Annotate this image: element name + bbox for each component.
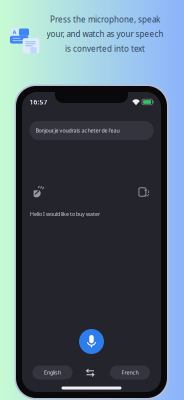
staticText: Hello I would like to buy water [30, 210, 100, 218]
button[interactable]: Start recording [79, 329, 104, 354]
staticText: 16:57 [29, 98, 47, 106]
button[interactable]: Swap languages [84, 366, 98, 378]
button[interactable]: English [32, 365, 72, 379]
staticText: A [12, 29, 16, 36]
staticText: Press the microphone, speak [50, 14, 160, 25]
staticText: Bonjour, je voudrais acheter de l'eau [35, 127, 119, 134]
staticText: is converted into text [65, 43, 145, 54]
staticText: your, and watch as your speech [46, 29, 163, 39]
button[interactable]: Play source audio [30, 183, 52, 203]
button[interactable]: French [110, 365, 150, 379]
staticText: English [44, 369, 61, 376]
button[interactable]: Copy translation [137, 184, 157, 204]
staticText: French [121, 369, 138, 376]
